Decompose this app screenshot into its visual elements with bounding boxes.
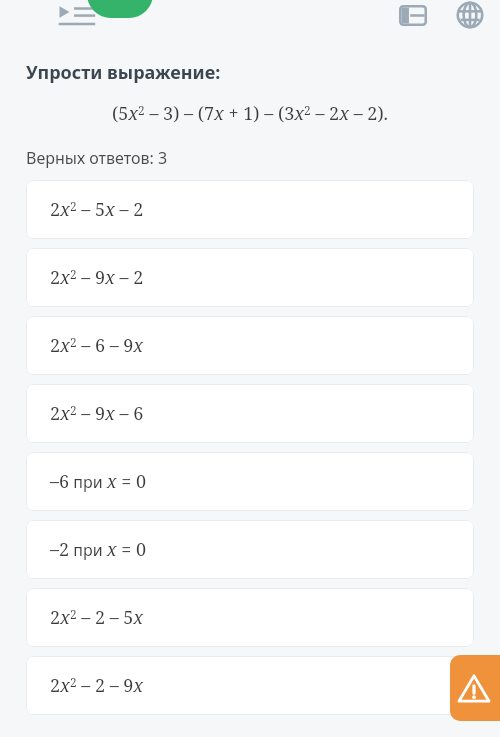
staticText: 2x2 – 5x – 2: [50, 197, 144, 222]
button[interactable]: 2x2 – 9x – 2: [26, 248, 474, 307]
staticText: (5x2 – 3) – (7x + 1) – (3x2 – 2x – 2).: [112, 101, 389, 126]
button[interactable]: –2 при x = 0: [26, 520, 474, 579]
button[interactable]: 2x2 – 9x – 6: [26, 384, 474, 443]
staticText: 2x2 – 2 – 5x: [50, 605, 144, 630]
button[interactable]: Report a problem: [450, 655, 500, 721]
staticText: Упрости выражение:: [26, 60, 221, 85]
staticText: Верных ответов: 3: [26, 147, 168, 169]
staticText: 2x2 – 6 – 9x: [50, 333, 144, 358]
button[interactable]: 2x2 – 2 – 5x: [26, 588, 474, 647]
button[interactable]: 2x2 – 6 – 9x: [26, 316, 474, 375]
button[interactable]: Tasks list: [396, 1, 430, 29]
staticText: 2x2 – 9x – 2: [50, 265, 144, 290]
button[interactable]: Menu: [57, 2, 97, 30]
staticText: 2x2 – 9x – 6: [50, 401, 144, 426]
button[interactable]: 2x2 – 5x – 2: [26, 180, 474, 239]
button[interactable]: –6 при x = 0: [26, 452, 474, 511]
staticText: –6 при x = 0: [50, 469, 147, 494]
button[interactable]: Language: [452, 0, 488, 30]
button[interactable]: Online Mektep: [87, 0, 153, 18]
button[interactable]: 2x2 – 2 – 9x: [26, 656, 474, 715]
staticText: 2x2 – 2 – 9x: [50, 673, 144, 698]
staticText: –2 при x = 0: [50, 537, 147, 562]
